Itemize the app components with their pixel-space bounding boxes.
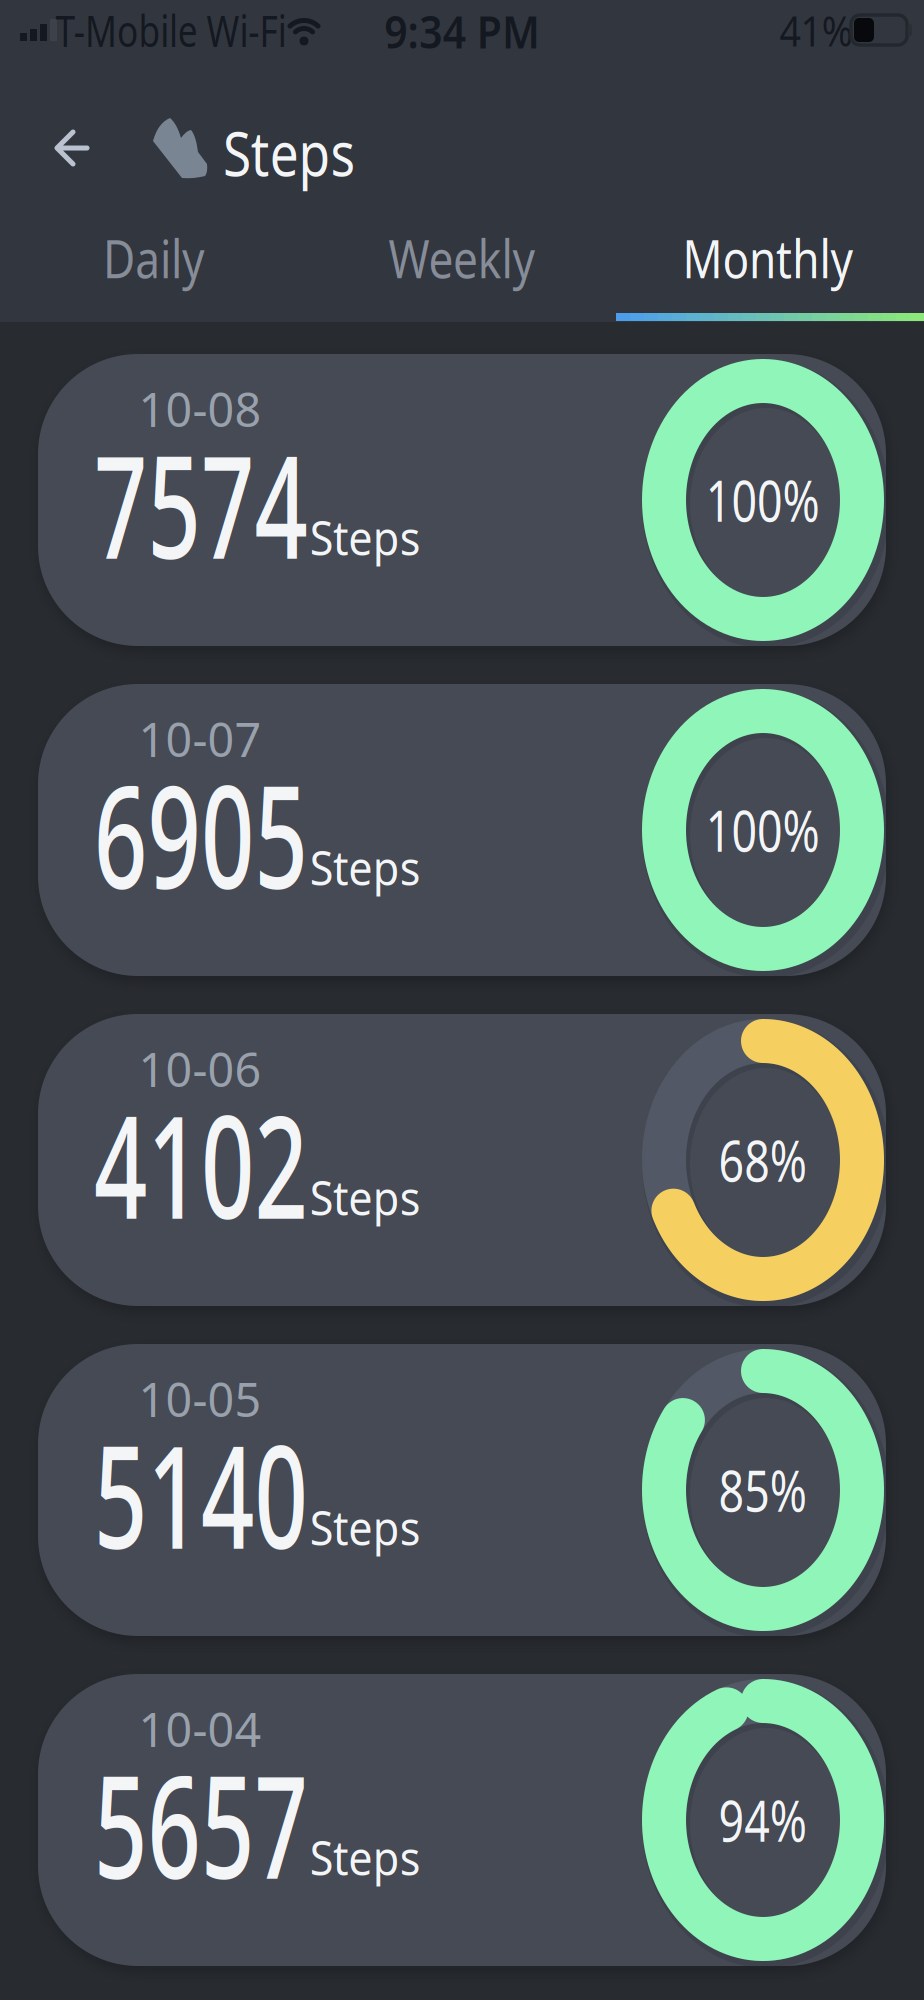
staticText: 7574 [39, 410, 363, 598]
staticText: 94% [707, 1783, 818, 1857]
staticText: Daily [94, 223, 214, 293]
staticText: Steps [303, 1825, 426, 1889]
staticText: Steps [303, 1495, 426, 1559]
staticText: 100% [691, 793, 834, 867]
staticText: 5657 [39, 1730, 363, 1918]
staticText: 100% [691, 463, 834, 537]
button[interactable]: Monthly [628, 218, 908, 298]
staticText: Steps [303, 835, 426, 899]
button[interactable]: Daily [14, 218, 294, 298]
staticText: 6905 [39, 740, 363, 928]
staticText: Weekly [375, 223, 548, 293]
staticText: Steps [303, 1165, 426, 1229]
staticText: 4102 [39, 1070, 363, 1258]
staticText: 10-04 [138, 1698, 261, 1760]
button[interactable]: 10-04 [38, 1674, 886, 1966]
button[interactable]: Weekly [322, 218, 602, 298]
button[interactable]: 10-06 [38, 1014, 886, 1306]
staticText: T-Mobile Wi-Fi [26, 1, 315, 59]
button[interactable]: Back [43, 124, 99, 172]
staticText: 9:34 PM [375, 1, 548, 61]
staticText: Monthly [667, 223, 868, 293]
button[interactable]: 10-07 [38, 684, 886, 976]
staticText: 10-07 [138, 708, 261, 770]
button[interactable]: 10-08 [38, 354, 886, 646]
staticText: 68% [707, 1123, 818, 1197]
staticText: 10-06 [138, 1038, 261, 1100]
staticText: Steps [303, 505, 426, 569]
staticText: 5140 [39, 1400, 363, 1588]
button[interactable]: 10-05 [38, 1344, 886, 1636]
staticText: 41% [774, 2, 857, 58]
staticText: 10-05 [138, 1368, 261, 1430]
staticText: 10-08 [138, 378, 261, 440]
staticText: Steps [208, 110, 369, 194]
staticText: 85% [707, 1453, 818, 1527]
